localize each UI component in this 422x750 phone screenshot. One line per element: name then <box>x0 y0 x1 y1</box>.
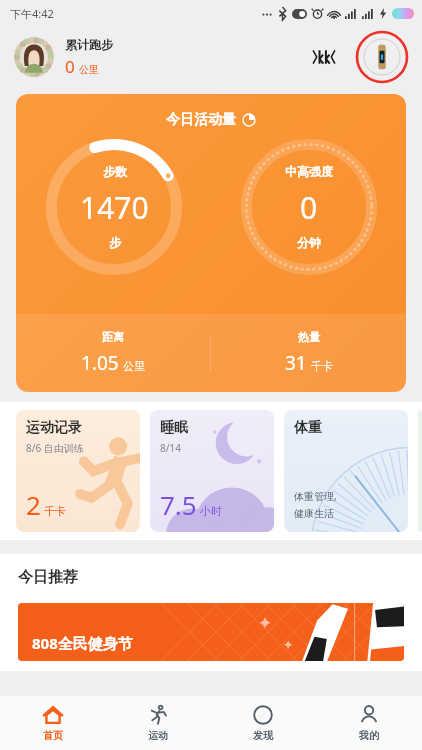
staticText: 首页 <box>43 729 63 742</box>
staticText: 步 <box>109 235 121 250</box>
staticText: 公里 <box>79 63 99 76</box>
button[interactable]: 体重 <box>284 410 408 532</box>
button[interactable]: Profile avatar <box>14 37 54 77</box>
button[interactable]: KK brand <box>308 45 340 69</box>
button[interactable]: My device <box>356 31 408 83</box>
staticText: 运动 <box>148 729 168 742</box>
staticText: 8/6 自由训练 <box>26 441 84 455</box>
button[interactable]: 运动记录 <box>16 410 140 532</box>
staticText: 千卡 <box>311 359 333 373</box>
button[interactable]: 808全民健身节 <box>18 603 404 661</box>
button[interactable]: 今日活动量 <box>16 94 406 392</box>
staticText: 公里 <box>123 359 145 373</box>
staticText: 0 <box>65 55 75 78</box>
staticText: 步数 <box>103 164 127 179</box>
staticText: 热量 <box>298 330 320 344</box>
staticText: 7.5 <box>160 487 197 522</box>
staticText: 0 <box>300 187 318 228</box>
button[interactable]: 发现 <box>210 696 316 750</box>
staticText: 2 <box>26 487 41 522</box>
staticText: 累计跑步 <box>65 37 113 52</box>
staticText: 下午4:42 <box>10 6 54 21</box>
staticText: 31 <box>285 350 307 376</box>
staticText: 体重 <box>294 419 322 437</box>
staticText: 体重管理, <box>294 489 337 503</box>
button[interactable]: 我的 <box>316 696 422 750</box>
staticText: 中高强度 <box>285 164 333 179</box>
button[interactable]: 首页 <box>0 696 105 750</box>
staticText: 发现 <box>253 729 273 742</box>
staticText: 分钟 <box>297 235 321 250</box>
staticText: 1470 <box>80 187 149 228</box>
staticText: 我的 <box>359 729 379 742</box>
button[interactable]: 睡眠 <box>150 410 274 532</box>
button[interactable]: 运动 <box>105 696 210 750</box>
staticText: 1.05 <box>81 350 119 376</box>
staticText: 千卡 <box>44 504 66 518</box>
staticText: 808全民健身节 <box>32 633 133 653</box>
staticText: 睡眠 <box>160 419 188 437</box>
staticText: 8/14 <box>160 441 181 455</box>
staticText: 小时 <box>200 504 222 518</box>
staticText: 运动记录 <box>26 419 82 437</box>
staticText: 健康生活 <box>294 507 334 520</box>
staticText: 今日推荐 <box>18 568 78 587</box>
staticText: 距离 <box>102 330 124 344</box>
staticText: 今日活动量 <box>166 111 236 129</box>
